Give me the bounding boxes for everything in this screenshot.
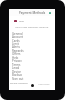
staticText: Alerts	[12, 45, 20, 48]
button[interactable]: Alerts	[9, 45, 55, 48]
staticText: Help	[12, 56, 19, 59]
staticText: Payment Methods	[19, 11, 46, 15]
staticText: Privacy	[12, 59, 22, 62]
button[interactable]: Help	[9, 56, 55, 59]
button[interactable]: Limit	[9, 42, 55, 45]
staticText: Offers	[12, 52, 21, 55]
button[interactable]: General	[9, 32, 55, 35]
staticText: Backup	[12, 73, 22, 76]
button[interactable]: Cards	[9, 39, 55, 42]
button[interactable]: Sign out	[9, 77, 55, 80]
staticText: Legal	[12, 66, 20, 69]
staticText: Secure checkout	[10, 82, 28, 85]
button[interactable]: Add card	[49, 12, 51, 14]
staticText: Terms	[12, 63, 21, 66]
button[interactable]: Visa	[9, 18, 55, 23]
button[interactable]: Offers	[9, 52, 55, 55]
staticText: Rewards	[12, 49, 24, 52]
staticText: Add a new payment method	[15, 25, 49, 28]
staticText: Device	[12, 70, 21, 73]
staticText: Limit	[12, 42, 19, 45]
staticText: Sign out	[12, 77, 24, 80]
button[interactable]: Home	[31, 84, 34, 87]
staticText: Need help?	[38, 83, 50, 86]
button[interactable]: Terms	[9, 63, 55, 66]
button[interactable]: Legal	[9, 66, 55, 69]
button[interactable]: Rewards	[9, 49, 55, 52]
button[interactable]: Privacy	[9, 59, 55, 62]
staticText: General	[12, 32, 23, 35]
staticText: Visa	[19, 19, 24, 22]
staticText: Account	[12, 35, 23, 38]
button[interactable]: Account	[9, 35, 55, 38]
button[interactable]: Device	[9, 70, 55, 73]
button[interactable]: Backup	[9, 73, 55, 76]
staticText: Cards	[12, 39, 20, 42]
